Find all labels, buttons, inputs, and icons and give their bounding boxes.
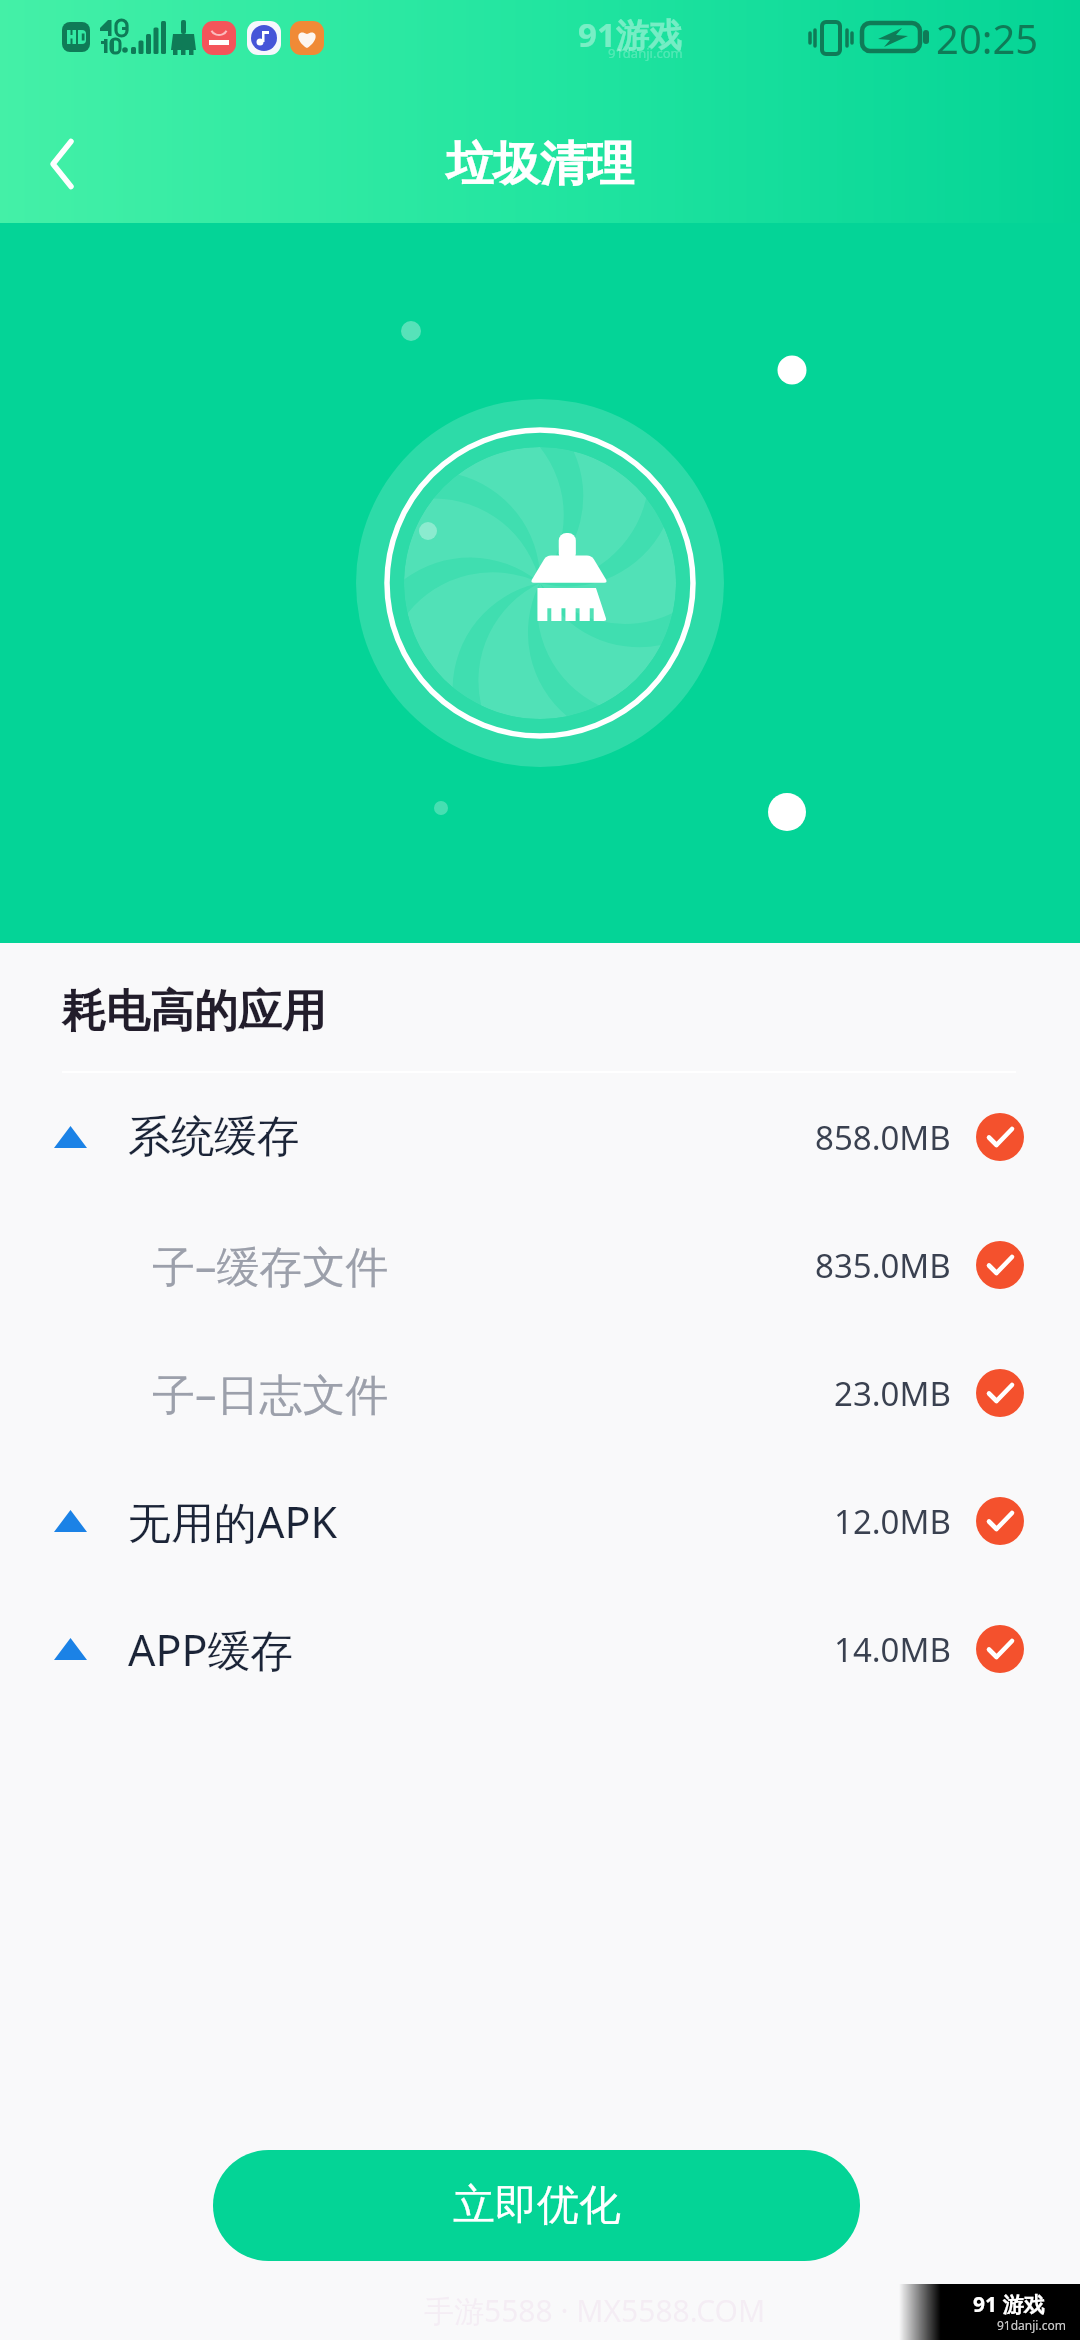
button[interactable]: 无用的APK	[0, 1457, 1080, 1585]
staticText: 91 游戏	[973, 2290, 1045, 2319]
staticText: 12.0MB	[834, 1499, 951, 1544]
staticText: 20:25	[936, 11, 1039, 65]
button[interactable]: 立即优化	[213, 2150, 860, 2261]
button[interactable]: Selected	[976, 1241, 1024, 1289]
staticText: 子–日志文件	[152, 1364, 389, 1423]
staticText: 无用的APK	[128, 1492, 338, 1551]
staticText: 91danji.com	[608, 44, 683, 62]
staticText: 立即优化	[453, 2179, 621, 2232]
staticText: 91danji.com	[997, 2317, 1066, 2333]
staticText: APP缓存	[128, 1620, 294, 1679]
staticText: 垃圾清理	[446, 135, 634, 194]
staticText: 耗电高的应用	[62, 984, 326, 1039]
button[interactable]: Selected	[976, 1369, 1024, 1417]
staticText: 14.0MB	[834, 1627, 951, 1672]
staticText: 系统缓存	[128, 1110, 300, 1164]
button[interactable]: Selected	[976, 1113, 1024, 1161]
button[interactable]: 子–日志文件	[0, 1329, 1080, 1457]
staticText: 858.0MB	[815, 1115, 951, 1160]
staticText: 835.0MB	[815, 1243, 951, 1288]
staticText: 23.0MB	[834, 1371, 951, 1416]
button[interactable]: Back	[22, 125, 86, 189]
button[interactable]: APP缓存	[0, 1585, 1080, 1713]
staticText: 91游戏	[578, 12, 682, 57]
button[interactable]: Selected	[976, 1497, 1024, 1545]
staticText: 子–缓存文件	[152, 1236, 389, 1295]
staticText: 手游5588 · MX5588.COM	[424, 2290, 766, 2331]
button[interactable]: 系统缓存	[0, 1073, 1080, 1201]
button[interactable]: Selected	[976, 1625, 1024, 1673]
button[interactable]: 子–缓存文件	[0, 1201, 1080, 1329]
